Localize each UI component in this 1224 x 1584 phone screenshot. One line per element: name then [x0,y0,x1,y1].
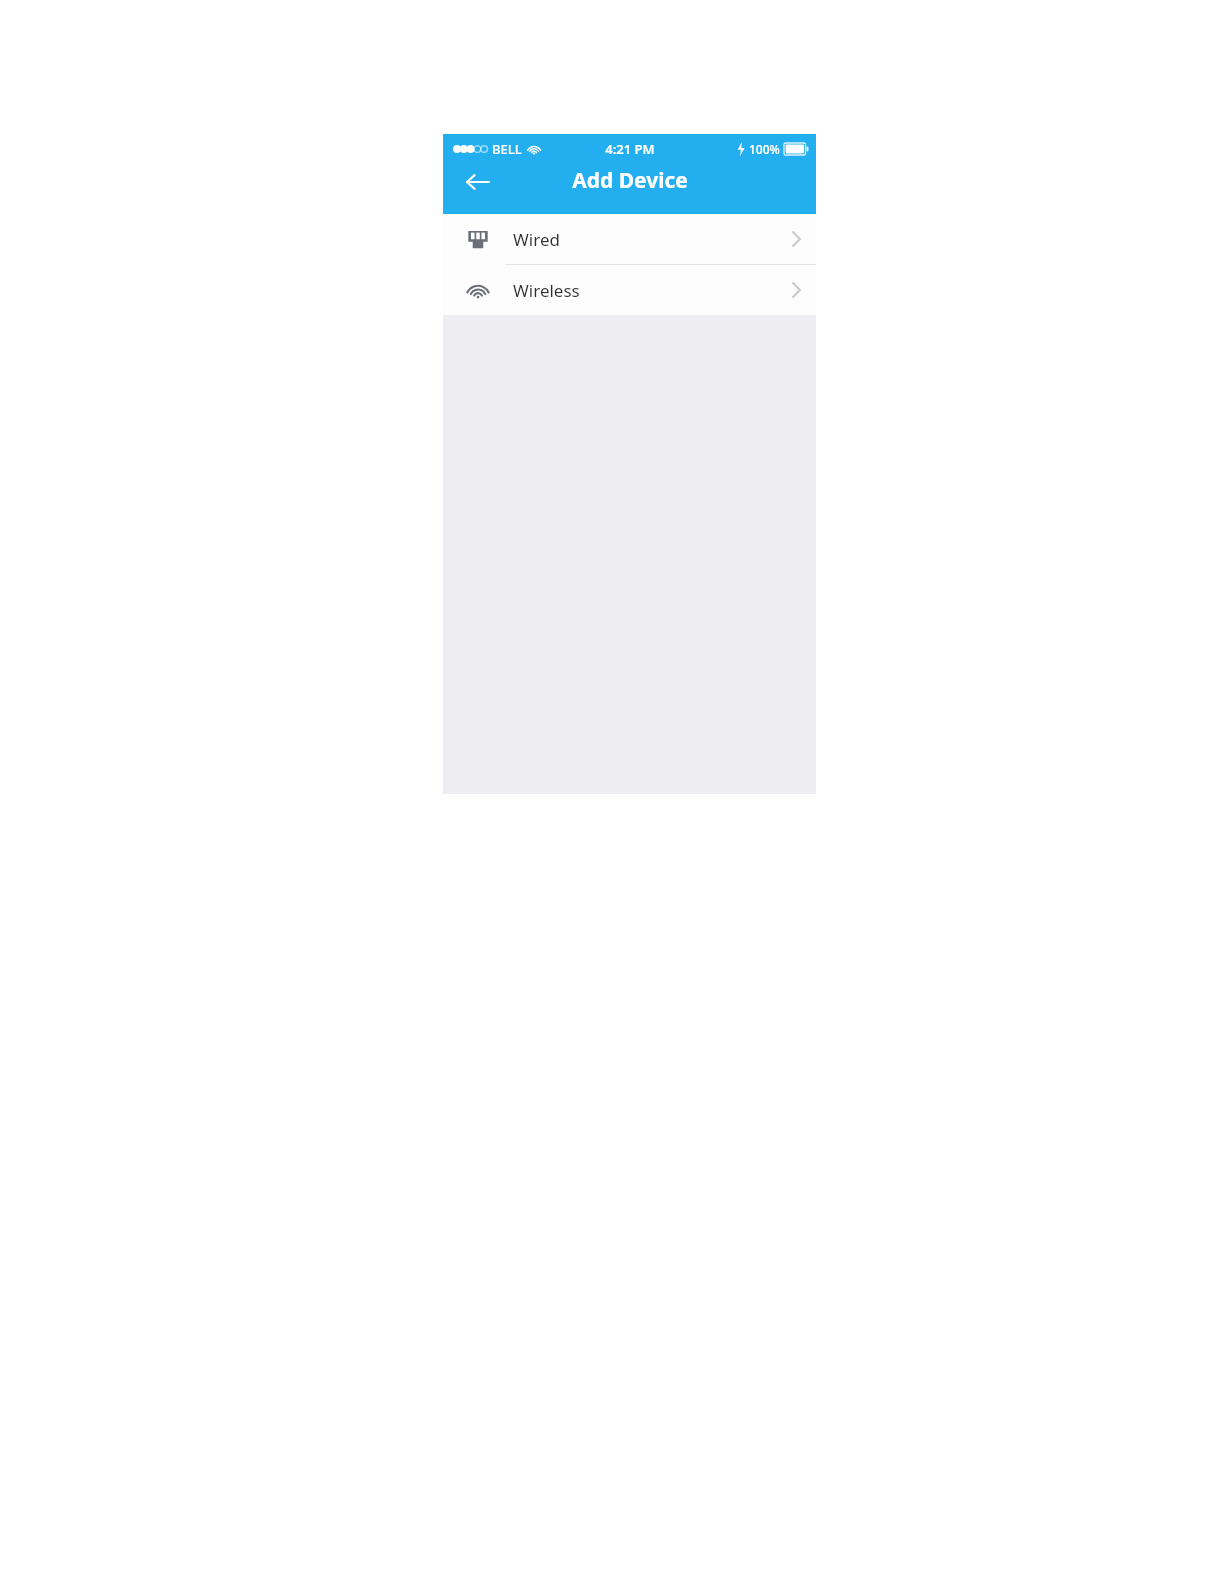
button[interactable]: Wired [443,214,816,264]
staticText: 4:21 PM [605,140,655,158]
button[interactable]: Back [455,160,499,204]
staticText: BELL [492,140,522,158]
staticText: 100% [749,141,780,157]
button[interactable]: Wireless [443,265,816,315]
staticText: Add Device [572,166,688,195]
staticText: Wireless [513,279,580,302]
staticText: Wired [513,228,560,251]
